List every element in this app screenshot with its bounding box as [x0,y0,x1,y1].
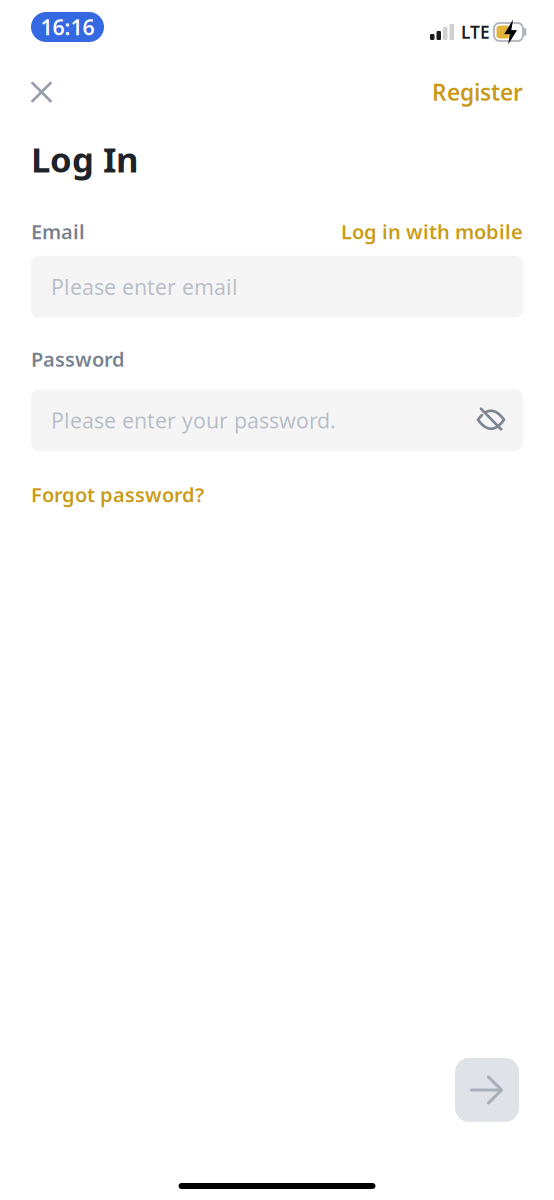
staticText: Email [31,218,85,245]
staticText: 16:16 [40,13,94,41]
button[interactable]: Register [432,77,523,107]
staticText: Log in with mobile [341,218,523,245]
button[interactable]: Log in with mobile [341,218,523,245]
staticText: Log In [31,136,139,182]
button[interactable]: Continue [455,1058,519,1122]
button[interactable]: Show password [477,407,505,434]
staticText: Forgot password? [31,481,204,508]
staticText: Please enter email [51,272,238,301]
button[interactable]: Forgot password? [31,481,204,508]
button[interactable]: Please enter your password. [31,389,523,451]
staticText: Password [31,346,125,372]
button[interactable]: Please enter email [31,256,523,318]
button[interactable]: Close [31,82,52,103]
staticText: Register [432,77,523,107]
staticText: LTE [461,20,490,43]
staticText: Please enter your password. [51,406,336,434]
